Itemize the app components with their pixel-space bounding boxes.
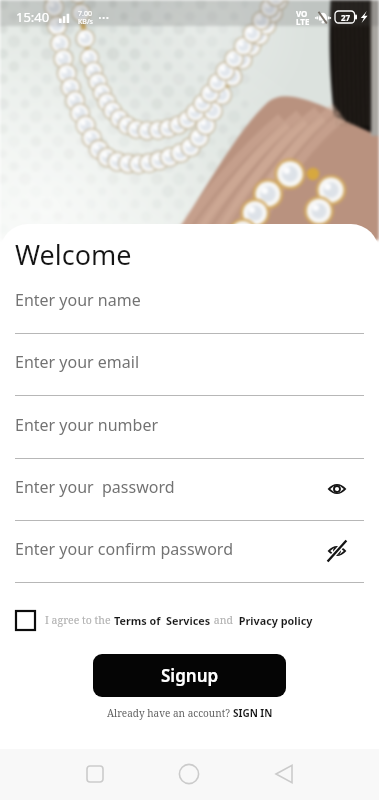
staticText: 15:40 [16, 8, 50, 26]
staticText: Enter your email [15, 351, 140, 373]
button[interactable]: Hide password [322, 536, 352, 566]
staticText: 7.00 KB/s [78, 9, 93, 26]
staticText: Enter your number [15, 414, 159, 436]
staticText: Welcome [15, 236, 132, 273]
button[interactable]: Agree to terms and conditions [16, 611, 35, 630]
button[interactable]: Enter your password [15, 460, 364, 513]
staticText: I agree to the [45, 613, 114, 627]
staticText: ··· [98, 8, 110, 26]
button[interactable]: Home [169, 754, 209, 794]
button[interactable]: SIGN IN [233, 706, 273, 720]
staticText: VO LTE [296, 8, 310, 26]
button[interactable]: Enter your email [15, 335, 364, 388]
button[interactable]: Back [264, 754, 304, 794]
button[interactable]: Recent apps [75, 754, 115, 794]
staticText: Enter your password [15, 476, 175, 498]
staticText: Signup [161, 664, 219, 687]
button[interactable]: Enter your name [15, 273, 364, 326]
button[interactable]: Privacy policy [236, 613, 313, 628]
button[interactable]: Signup [93, 654, 286, 697]
staticText: and [211, 613, 236, 627]
staticText: 27 [341, 12, 351, 23]
button[interactable]: Enter your confirm password [15, 522, 364, 575]
staticText: Already have an account? [107, 706, 233, 720]
button[interactable]: Enter your number [15, 398, 364, 451]
staticText: Enter your name [15, 289, 141, 311]
button[interactable]: Terms of Services [114, 613, 211, 628]
staticText: Enter your confirm password [15, 538, 233, 560]
button[interactable]: Show password [322, 474, 352, 504]
